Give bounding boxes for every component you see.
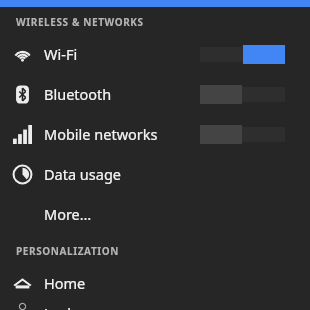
button[interactable]: Toggle off: [200, 125, 285, 144]
other: Wi-Fi: [13, 45, 32, 64]
other: Lock screen: [13, 303, 32, 310]
staticText: Mobile networks: [44, 124, 200, 144]
staticText: PERSONALIZATION: [16, 244, 120, 258]
button[interactable]: Lock screen: [0, 303, 310, 310]
other: Bluetooth: [13, 85, 32, 104]
button[interactable]: Toggle off: [200, 85, 285, 104]
button[interactable]: Wi-Fi: [0, 34, 310, 74]
button[interactable]: Mobile networks: [0, 114, 310, 154]
staticText: Home: [44, 273, 310, 293]
button[interactable]: Bluetooth: [0, 74, 310, 114]
other: Home: [13, 274, 32, 293]
button[interactable]: Home: [0, 263, 310, 303]
other: Mobile networks: [13, 125, 32, 144]
staticText: Bluetooth: [44, 84, 200, 104]
staticText: Wi-Fi: [44, 44, 200, 64]
button[interactable]: More…: [0, 194, 310, 234]
staticText: Data usage: [44, 164, 310, 184]
staticText: Lock screen: [44, 303, 310, 310]
staticText: More…: [44, 204, 310, 224]
button[interactable]: Data usage: [0, 154, 310, 194]
button[interactable]: Toggle on: [200, 45, 285, 64]
staticText: WIRELESS & NETWORKS: [16, 15, 144, 29]
other: Data usage: [13, 165, 32, 184]
